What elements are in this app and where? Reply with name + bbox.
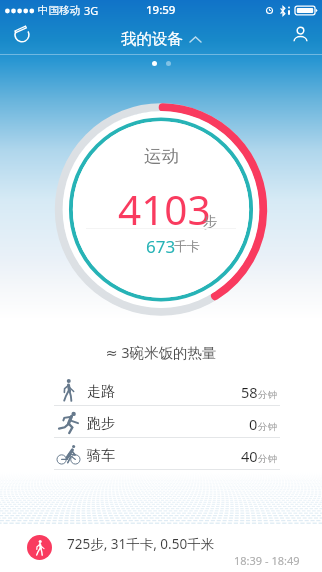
button[interactable]: 725步, 31千卡, 0.50千米 [0,525,322,572]
staticText: 跑步 [87,415,115,433]
staticText: ≈ 3碗米饭的热量 [0,342,322,362]
staticText: 725步, 31千卡, 0.50千米 [67,535,215,553]
staticText: 我的设备 [121,29,183,49]
staticText: 中国移动 [38,4,80,17]
staticText: 千卡 [174,238,200,254]
button[interactable]: Account [284,18,316,50]
button[interactable]: 骑车 [0,438,322,470]
staticText: 3G [84,3,99,18]
button[interactable]: 走路 [0,374,322,406]
staticText: 40 [241,446,258,466]
staticText: 18:39 - 18:49 [234,553,300,568]
button[interactable]: 我的设备 [121,29,202,49]
staticText: 步 [203,213,218,231]
staticText: 4103 [118,182,211,237]
staticText: 走路 [87,383,115,401]
staticText: 673 [146,235,176,258]
staticText: 分钟 [258,389,277,401]
staticText: 58 [241,382,258,402]
button[interactable]: My band [6,18,38,50]
staticText: 分钟 [258,421,277,433]
staticText: 19:59 [146,2,176,18]
staticText: 骑车 [87,447,115,465]
staticText: 0 [249,414,258,434]
button[interactable]: 跑步 [0,406,322,438]
staticText: 分钟 [258,453,277,465]
staticText: 运动 [144,145,179,167]
